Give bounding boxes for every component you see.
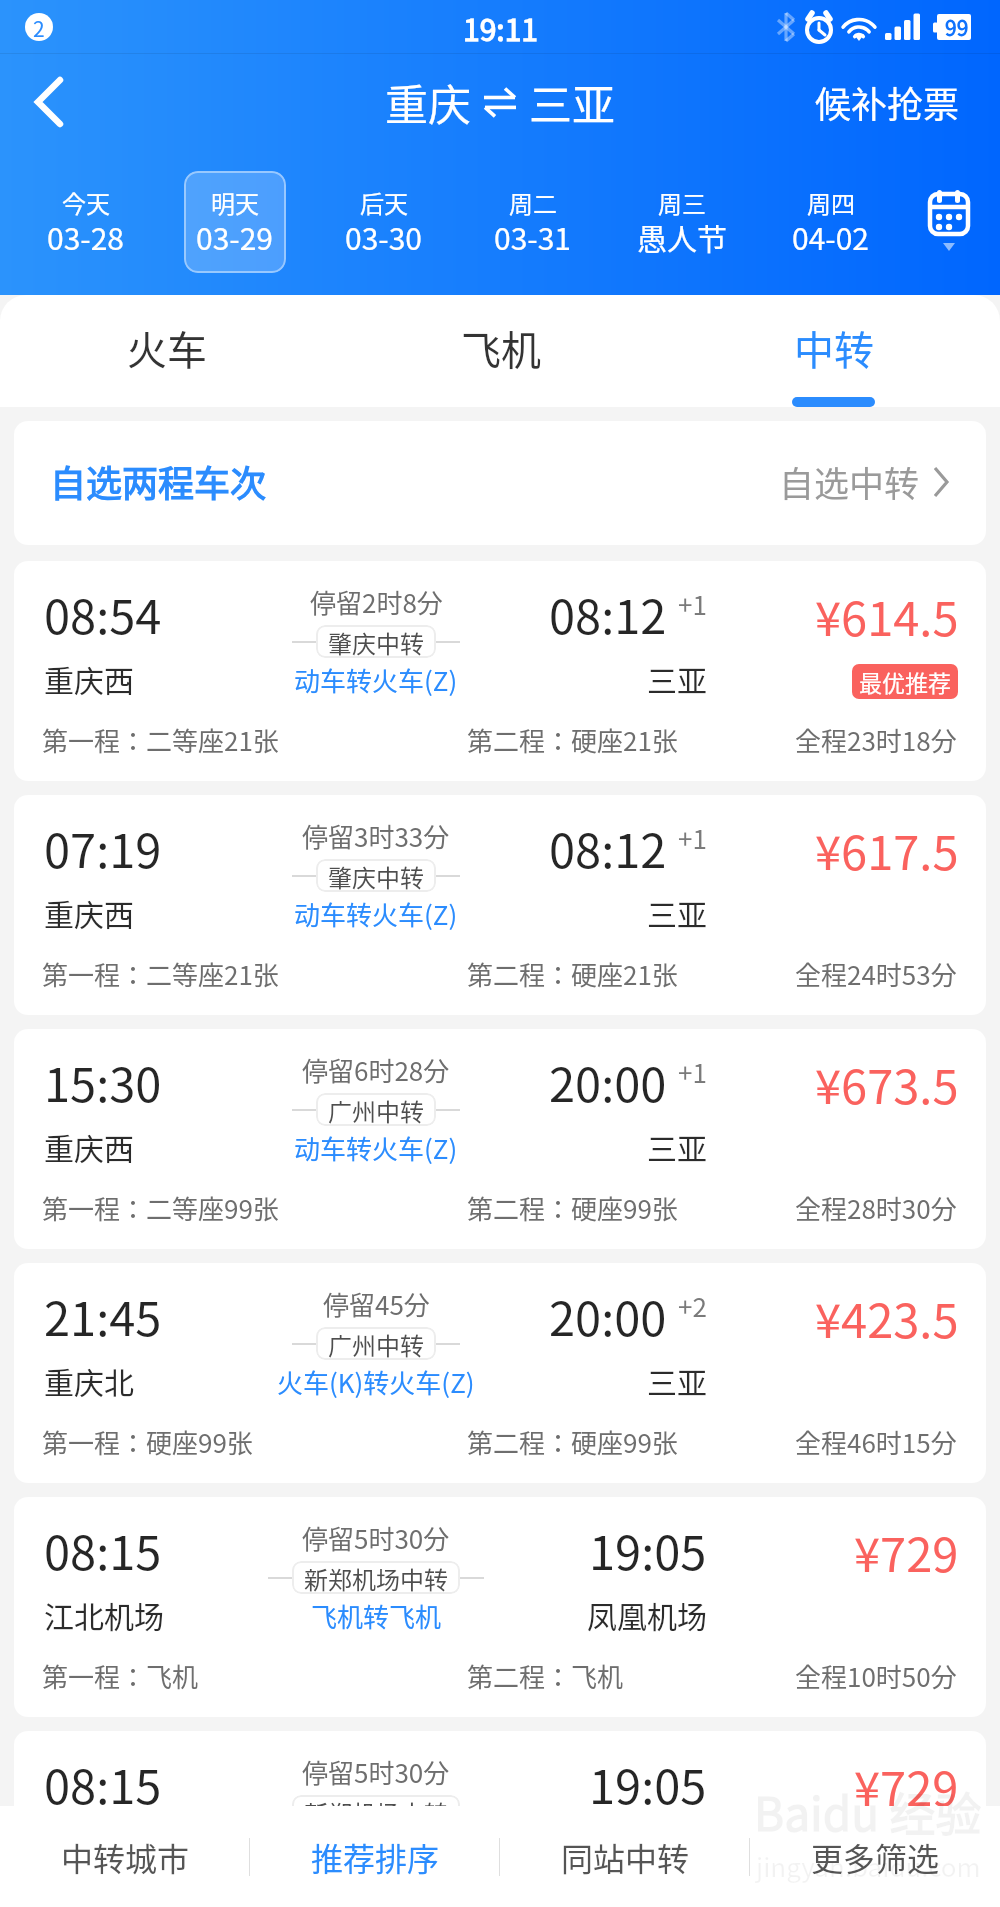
- staticText: 广州中转: [328, 1093, 424, 1126]
- staticText: 重庆西: [44, 657, 134, 700]
- staticText: 新郑机场中转: [304, 1561, 448, 1594]
- button[interactable]: 周三: [631, 171, 733, 273]
- staticText: 第一程：二等座21张: [42, 955, 279, 993]
- button[interactable]: Calendar: [905, 149, 1000, 295]
- staticText: 19:11: [463, 6, 538, 49]
- staticText: 第二程：硬座21张: [467, 955, 678, 993]
- staticText: +1: [678, 819, 707, 857]
- button[interactable]: 更多筛选: [750, 1806, 1000, 1907]
- staticText: 火车(K)转火车(Z): [277, 1363, 475, 1401]
- staticText: 重庆: [385, 71, 471, 133]
- button[interactable]: 中转: [667, 295, 1000, 407]
- button[interactable]: 明天: [184, 171, 286, 273]
- button[interactable]: 08:15: [14, 1497, 986, 1717]
- staticText: 全程24时53分: [795, 955, 957, 993]
- staticText: 停留45分: [323, 1285, 430, 1323]
- staticText: 周二: [509, 185, 557, 220]
- staticText: 03-30: [345, 215, 423, 258]
- staticText: 更多筛选: [811, 1834, 940, 1880]
- staticText: 重庆西: [44, 1125, 134, 1168]
- button[interactable]: 中转城市: [0, 1806, 250, 1907]
- staticText: 三亚: [647, 657, 707, 700]
- staticText: 2: [33, 13, 45, 41]
- staticText: 周三: [658, 185, 706, 220]
- staticText: +1: [678, 585, 707, 623]
- staticText: 肇庆中转: [328, 625, 424, 658]
- staticText: 候补抢票: [815, 76, 960, 128]
- staticText: 火车: [127, 319, 207, 377]
- staticText: 第一程：二等座99张: [42, 1189, 279, 1227]
- staticText: 03-28: [47, 215, 125, 258]
- button[interactable]: 周四: [780, 171, 882, 273]
- staticText: 动车转火车(Z): [294, 895, 458, 933]
- button[interactable]: 周二: [482, 171, 584, 273]
- staticText: 全程46时15分: [795, 1423, 957, 1461]
- button[interactable]: 08:15: [14, 1731, 986, 1907]
- staticText: 15:30: [44, 1047, 162, 1115]
- staticText: 08:12: [549, 579, 667, 647]
- staticText: 第一程：硬座99张: [42, 1423, 253, 1461]
- staticText: 三亚: [529, 71, 615, 133]
- button[interactable]: 15:30: [14, 1029, 986, 1249]
- staticText: ¥729: [854, 1517, 959, 1585]
- staticText: 飞机: [461, 319, 541, 377]
- staticText: 停留5时30分: [302, 1519, 450, 1557]
- staticText: 停留6时28分: [302, 1051, 450, 1089]
- staticText: 第二程：飞机: [467, 1657, 624, 1695]
- staticText: 全程23时18分: [795, 721, 957, 759]
- staticText: ¥617.5: [815, 815, 959, 883]
- staticText: 飞机转飞机: [311, 1831, 442, 1869]
- staticText: 08:12: [549, 813, 667, 881]
- staticText: 19:05: [589, 1749, 707, 1817]
- staticText: 中转: [794, 319, 874, 377]
- staticText: 全程10时50分: [795, 1657, 957, 1695]
- button[interactable]: 自选两程车次: [14, 421, 986, 545]
- staticText: 推荐排序: [311, 1834, 440, 1880]
- staticText: 08:54: [44, 579, 162, 647]
- button[interactable]: Back: [14, 67, 84, 137]
- button[interactable]: 火车: [0, 295, 334, 407]
- staticText: 今天: [62, 185, 110, 220]
- staticText: 重庆北: [44, 1359, 134, 1402]
- staticText: 新郑机场中转: [304, 1795, 448, 1828]
- staticText: 07:19: [44, 813, 162, 881]
- staticText: 凤凰机场: [587, 1593, 707, 1636]
- staticText: 03-29: [196, 215, 274, 258]
- staticText: 中转城市: [61, 1834, 190, 1880]
- button[interactable]: 07:19: [14, 795, 986, 1015]
- staticText: 自选两程车次: [50, 455, 267, 507]
- button[interactable]: 08:54: [14, 561, 986, 781]
- button[interactable]: 同站中转: [500, 1806, 750, 1907]
- staticText: 三亚: [647, 1359, 707, 1402]
- staticText: 凤凰机场: [587, 1827, 707, 1870]
- button[interactable]: 推荐排序: [250, 1806, 500, 1907]
- staticText: 同站中转: [561, 1834, 690, 1880]
- staticText: 动车转火车(Z): [294, 1129, 458, 1167]
- staticText: 08:15: [44, 1749, 162, 1817]
- staticText: ¥614.5: [815, 581, 959, 649]
- staticText: 全程28时30分: [795, 1189, 957, 1227]
- staticText: 第一程：飞机: [42, 1657, 199, 1695]
- staticText: 三亚: [647, 1125, 707, 1168]
- staticText: 08:15: [44, 1515, 162, 1583]
- button[interactable]: 21:45: [14, 1263, 986, 1483]
- staticText: jingyan.baidu.com: [756, 1847, 981, 1885]
- staticText: ¥729: [854, 1751, 959, 1819]
- staticText: 动车转火车(Z): [294, 661, 458, 699]
- staticText: 广州中转: [328, 1327, 424, 1360]
- staticText: 江北机场: [44, 1593, 164, 1636]
- staticText: 第二程：硬座21张: [467, 721, 678, 759]
- staticText: 停留5时30分: [302, 1753, 450, 1791]
- button[interactable]: 候补抢票: [809, 68, 966, 136]
- staticText: 第二程：硬座99张: [467, 1189, 678, 1227]
- staticText: 20:00: [549, 1047, 667, 1115]
- button[interactable]: 今天: [35, 171, 137, 273]
- staticText: 第二程：硬座99张: [467, 1423, 678, 1461]
- staticText: ¥423.5: [815, 1283, 959, 1351]
- staticText: 停留2时8分: [310, 583, 443, 621]
- button[interactable]: 后天: [333, 171, 435, 273]
- button[interactable]: 飞机: [334, 295, 667, 407]
